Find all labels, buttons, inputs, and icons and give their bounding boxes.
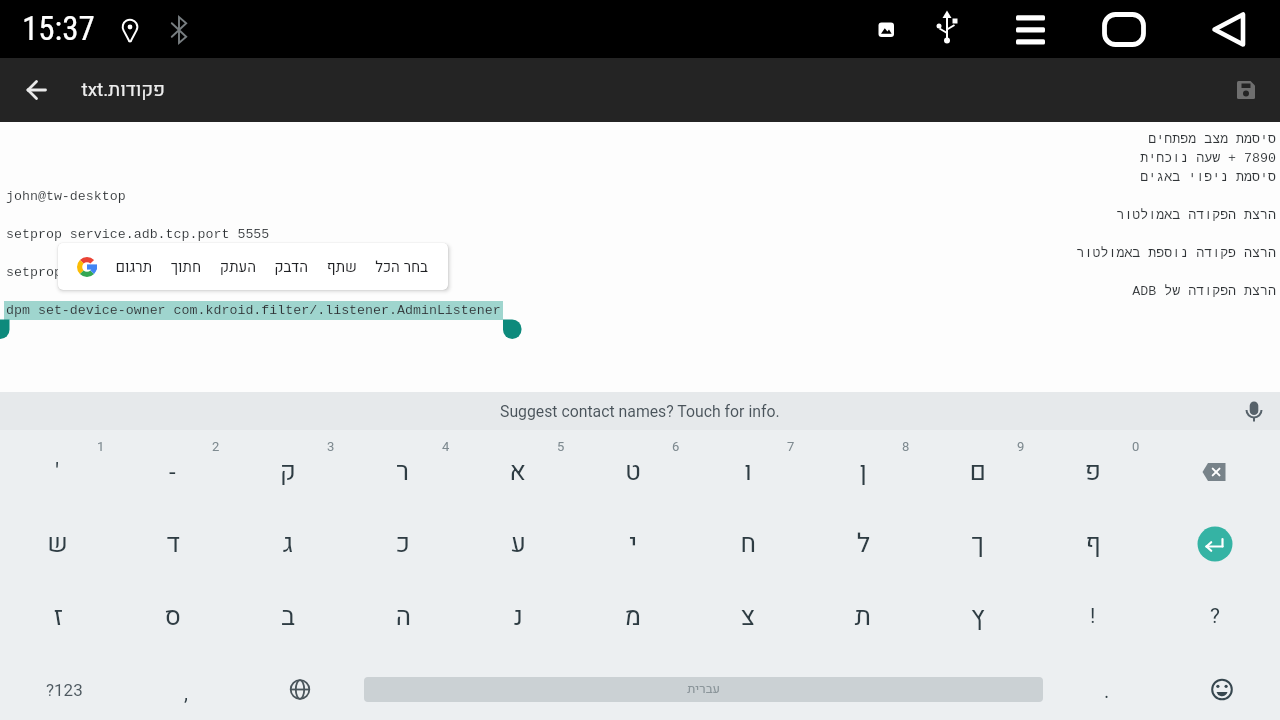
staticText: john@tw-desktop	[6, 189, 126, 204]
button[interactable]: צ	[690, 574, 805, 647]
button[interactable]: ט	[575, 430, 690, 502]
staticText: ם	[969, 453, 986, 491]
staticText: Suggest contact names? Touch for info.	[500, 402, 780, 421]
button[interactable]: כ	[345, 502, 460, 574]
staticText: -	[169, 458, 176, 486]
staticText: חתוך	[170, 256, 201, 278]
button[interactable]	[1082, 0, 1148, 58]
staticText: העתק	[219, 256, 256, 278]
staticText: dpm set-device-owner com.kdroid.filter/.…	[6, 303, 501, 318]
button[interactable]: תרגום	[115, 256, 152, 278]
button[interactable]: חתוך	[170, 256, 201, 278]
button[interactable]: מ	[575, 574, 690, 647]
staticText: '	[55, 458, 60, 486]
staticText: 3	[327, 439, 335, 454]
button[interactable]: ש	[0, 502, 115, 574]
button[interactable]	[1226, 70, 1266, 110]
button[interactable]	[12, 66, 60, 114]
staticText: ד	[166, 525, 180, 563]
button[interactable]: '	[0, 430, 115, 502]
staticText: נ	[513, 598, 523, 636]
button[interactable]: ו	[690, 430, 805, 502]
button[interactable]: ז	[0, 574, 115, 647]
staticText: ך	[971, 525, 984, 563]
button[interactable]: ?	[1150, 574, 1280, 647]
staticText: !	[1090, 604, 1096, 629]
staticText: ?123	[46, 680, 83, 700]
staticText: 5	[557, 439, 565, 454]
button[interactable]: ג	[230, 502, 345, 574]
staticText: כ	[396, 525, 410, 563]
staticText: ן	[859, 453, 867, 491]
button[interactable]	[1240, 397, 1268, 425]
staticText: י	[629, 525, 637, 563]
staticText: ,	[184, 681, 188, 704]
button[interactable]	[1214, 0, 1280, 58]
staticText: 7890 + שעה נוכחית	[1140, 151, 1276, 166]
button[interactable]: .	[1050, 647, 1164, 720]
button[interactable]: ח	[690, 502, 805, 574]
button[interactable]: שתף	[326, 256, 357, 278]
staticText: setprop service.adb.tcp.port 5555	[6, 265, 270, 280]
button[interactable]: ך	[920, 502, 1035, 574]
staticText: 4	[442, 439, 450, 454]
button[interactable]: ,	[128, 647, 243, 720]
staticText: ו	[744, 453, 752, 491]
staticText: ז	[53, 598, 63, 636]
button[interactable]: ק	[230, 430, 345, 502]
button[interactable]	[77, 257, 97, 277]
staticText: א	[509, 453, 526, 491]
staticText: שתף	[326, 256, 357, 278]
button[interactable]: ב	[230, 574, 345, 647]
staticText: הרצת הפקודה של ADB	[1132, 284, 1276, 299]
button[interactable]: ס	[115, 574, 230, 647]
staticText: ש	[47, 525, 68, 563]
button[interactable]: ן	[805, 430, 920, 502]
staticText: ט	[624, 453, 641, 491]
button[interactable]: ר	[345, 430, 460, 502]
staticText: עברית	[687, 679, 720, 698]
staticText: צ	[740, 598, 755, 636]
staticText: הרצת הפקודה באמולטור	[1116, 208, 1276, 223]
button[interactable]	[1150, 502, 1280, 574]
staticText: סיסמת מצב מפתחים	[1148, 132, 1276, 147]
button[interactable]: עברית	[357, 647, 1050, 720]
button[interactable]: ע	[460, 502, 575, 574]
staticText: ב	[281, 598, 295, 636]
staticText: מ	[624, 598, 641, 636]
button[interactable]: ה	[345, 574, 460, 647]
button[interactable]	[1164, 647, 1280, 720]
button[interactable]: א	[460, 430, 575, 502]
button[interactable]: נ	[460, 574, 575, 647]
staticText: ?	[1210, 604, 1220, 629]
button[interactable]: העתק	[219, 256, 256, 278]
button[interactable]: ף	[1035, 502, 1150, 574]
button[interactable]: בחר הכל	[375, 256, 428, 278]
staticText: ס	[164, 598, 181, 636]
staticText: ר	[396, 453, 409, 491]
button[interactable]: ?123	[0, 647, 128, 720]
button[interactable]	[243, 647, 357, 720]
staticText: 1	[97, 439, 105, 454]
button[interactable]: ם	[920, 430, 1035, 502]
button[interactable]: ד	[115, 502, 230, 574]
staticText: ג	[282, 525, 293, 563]
button[interactable]: י	[575, 502, 690, 574]
button[interactable]: הדבק	[274, 256, 308, 278]
staticText: 9	[1017, 439, 1025, 454]
button[interactable]: פ	[1035, 430, 1150, 502]
button[interactable]: !	[1035, 574, 1150, 647]
staticText: .	[1104, 679, 1110, 702]
staticText: 0	[1132, 439, 1140, 454]
staticText: ץ	[971, 598, 985, 636]
button[interactable]: Suggest contact names? Touch for info.	[0, 392, 1280, 430]
button[interactable]: -	[115, 430, 230, 502]
staticText: 7	[787, 439, 795, 454]
button[interactable]: ל	[805, 502, 920, 574]
button[interactable]	[1148, 0, 1214, 58]
staticText: הדבק	[274, 256, 308, 278]
button[interactable]: ת	[805, 574, 920, 647]
button[interactable]	[1150, 430, 1280, 502]
button[interactable]: ץ	[920, 574, 1035, 647]
staticText: ע	[510, 525, 526, 563]
